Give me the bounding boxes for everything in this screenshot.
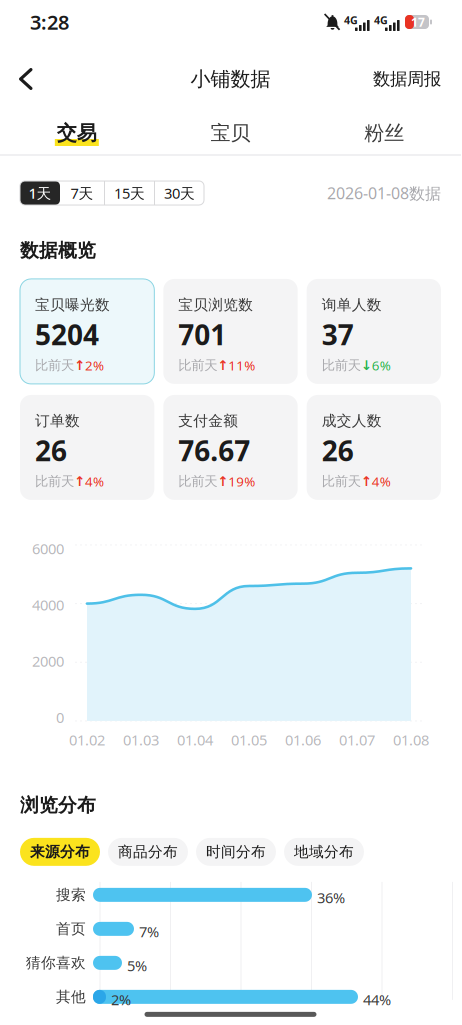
staticText: 01.02 <box>69 730 105 750</box>
staticText: 19% <box>228 473 255 490</box>
button[interactable]: 询单人数 <box>307 279 441 384</box>
button[interactable]: 宝贝曝光数 <box>20 279 154 384</box>
staticText: ↑ <box>217 358 228 373</box>
staticText: 4000 <box>32 595 64 615</box>
staticText: 来源分布 <box>30 843 90 861</box>
staticText: ↑ <box>217 474 228 489</box>
staticText: 36% <box>317 888 345 907</box>
staticText: 4G <box>374 13 388 27</box>
staticText: 01.04 <box>177 730 213 750</box>
staticText: 76.67 <box>178 432 250 469</box>
staticText: 11% <box>228 357 255 374</box>
staticText: 01.06 <box>285 730 321 750</box>
staticText: 地域分布 <box>294 843 354 861</box>
staticText: 3:28 <box>30 9 69 35</box>
staticText: 4G <box>344 13 358 27</box>
staticText: 01.03 <box>123 730 159 750</box>
button[interactable]: 交易 <box>0 114 154 154</box>
staticText: 搜索 <box>56 886 86 904</box>
staticText: 44% <box>363 990 391 1009</box>
staticText: 701 <box>178 316 226 353</box>
staticText: 宝贝曝光数 <box>35 296 110 314</box>
staticText: 2% <box>85 357 104 374</box>
staticText: ↓ <box>361 358 372 373</box>
staticText: 1天 <box>28 183 51 203</box>
staticText: 5204 <box>35 316 99 353</box>
button[interactable]: 商品分布 <box>108 838 188 866</box>
staticText: 宝贝浏览数 <box>178 296 253 314</box>
button[interactable]: 粉丝 <box>307 114 461 154</box>
staticText: 30天 <box>164 183 195 203</box>
staticText: 比前天 <box>35 357 74 374</box>
button[interactable]: 成交人数 <box>307 395 441 500</box>
button[interactable]: 数据周报 <box>373 44 441 114</box>
staticText: 2000 <box>32 651 64 671</box>
staticText: 交易 <box>57 121 97 145</box>
staticText: 首页 <box>56 920 86 938</box>
staticText: 数据周报 <box>373 68 441 90</box>
staticText: 6000 <box>32 539 64 558</box>
button[interactable]: 支付金额 <box>163 395 298 500</box>
staticText: 比前天 <box>35 473 74 490</box>
staticText: 订单数 <box>35 412 80 430</box>
staticText: 猜你喜欢 <box>26 954 86 972</box>
staticText: 比前天 <box>322 357 361 374</box>
staticText: 时间分布 <box>206 843 266 861</box>
staticText: 小铺数据 <box>190 67 270 91</box>
staticText: ↑ <box>74 358 85 373</box>
button[interactable]: 1天 <box>20 181 60 205</box>
button[interactable]: 30天 <box>155 181 204 205</box>
staticText: 37 <box>322 316 354 353</box>
staticText: 数据概览 <box>20 239 96 262</box>
staticText: 其他 <box>56 988 86 1006</box>
staticText: 比前天 <box>178 473 217 490</box>
staticText: 0 <box>56 707 64 727</box>
staticText: 宝贝 <box>210 121 250 145</box>
staticText: 15天 <box>114 183 145 203</box>
staticText: 01.05 <box>231 730 267 750</box>
staticText: 26 <box>322 432 354 469</box>
button[interactable]: 宝贝浏览数 <box>163 279 298 384</box>
staticText: 01.08 <box>393 730 429 750</box>
staticText: 01.07 <box>339 730 375 750</box>
staticText: 7天 <box>70 183 93 203</box>
staticText: 2026-01-08数据 <box>327 182 441 204</box>
staticText: ↑ <box>361 474 372 489</box>
staticText: 支付金额 <box>178 412 238 430</box>
button[interactable]: 时间分布 <box>196 838 276 866</box>
staticText: 7% <box>139 922 159 941</box>
button[interactable]: 地域分布 <box>284 838 364 866</box>
staticText: 5% <box>127 956 147 975</box>
button[interactable]: 来源分布 <box>20 838 100 866</box>
staticText: 4% <box>372 473 391 490</box>
staticText: 成交人数 <box>322 412 382 430</box>
button[interactable]: 7天 <box>60 181 104 205</box>
staticText: 粉丝 <box>364 121 404 145</box>
staticText: 商品分布 <box>118 843 178 861</box>
staticText: 6% <box>372 357 391 374</box>
staticText: 2% <box>111 990 131 1009</box>
staticText: 浏览分布 <box>20 794 96 817</box>
button[interactable]: 15天 <box>105 181 154 205</box>
staticText: 4% <box>85 473 104 490</box>
staticText: 比前天 <box>178 357 217 374</box>
button[interactable]: 宝贝 <box>154 114 307 154</box>
staticText: 17 <box>411 14 425 30</box>
staticText: 询单人数 <box>322 296 382 314</box>
button[interactable]: 返回 <box>19 44 65 114</box>
staticText: ↑ <box>74 474 85 489</box>
button[interactable]: 订单数 <box>20 395 154 500</box>
staticText: 26 <box>35 432 67 469</box>
staticText: 比前天 <box>322 473 361 490</box>
